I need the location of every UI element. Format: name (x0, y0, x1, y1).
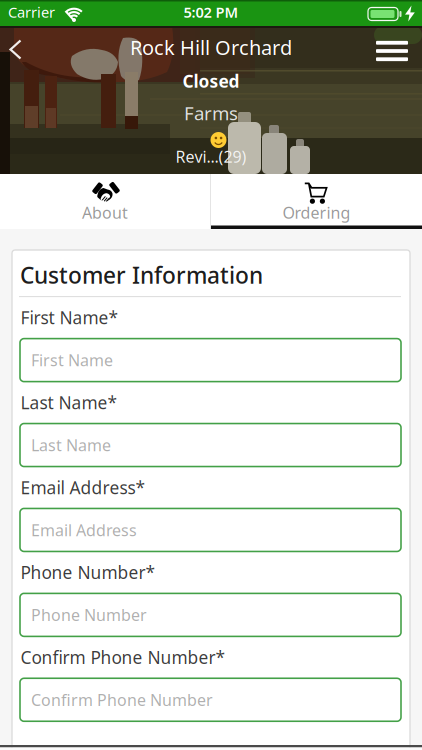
button[interactable]: Phone Number* (20, 593, 401, 636)
staticText: Carrier (8, 2, 55, 22)
button[interactable]: Last Name* (20, 423, 401, 466)
staticText: Revi...(29) (175, 146, 246, 167)
staticText: Customer Information (20, 260, 263, 290)
button[interactable]: Ordering (211, 174, 422, 229)
staticText: First Name* (20, 306, 118, 329)
button[interactable]: About (0, 174, 210, 229)
staticText: Phone Number (31, 604, 147, 625)
staticText: About (82, 202, 128, 223)
button[interactable]: Back (8, 38, 24, 61)
staticText: Phone Number* (20, 561, 155, 584)
button[interactable]: Menu (375, 39, 409, 63)
staticText: Email Address (31, 519, 137, 540)
staticText: Email Address* (20, 476, 145, 499)
staticText: First Name (31, 349, 113, 371)
staticText: Last Name (31, 434, 111, 456)
staticText: Confirm Phone Number* (20, 646, 225, 669)
staticText: Confirm Phone Number (31, 689, 213, 710)
button[interactable]: Confirm Phone Number* (20, 678, 401, 721)
button[interactable]: Reviews (175, 129, 246, 167)
staticText: Closed (182, 69, 239, 92)
staticText: Ordering (282, 202, 350, 223)
staticText: Last Name* (20, 391, 117, 414)
staticText: Farms (184, 100, 238, 125)
staticText: 5:02 PM (183, 2, 238, 22)
staticText: Rock Hill Orchard (130, 34, 292, 61)
button[interactable]: First Name* (20, 339, 401, 382)
button[interactable]: Email Address* (20, 508, 401, 551)
